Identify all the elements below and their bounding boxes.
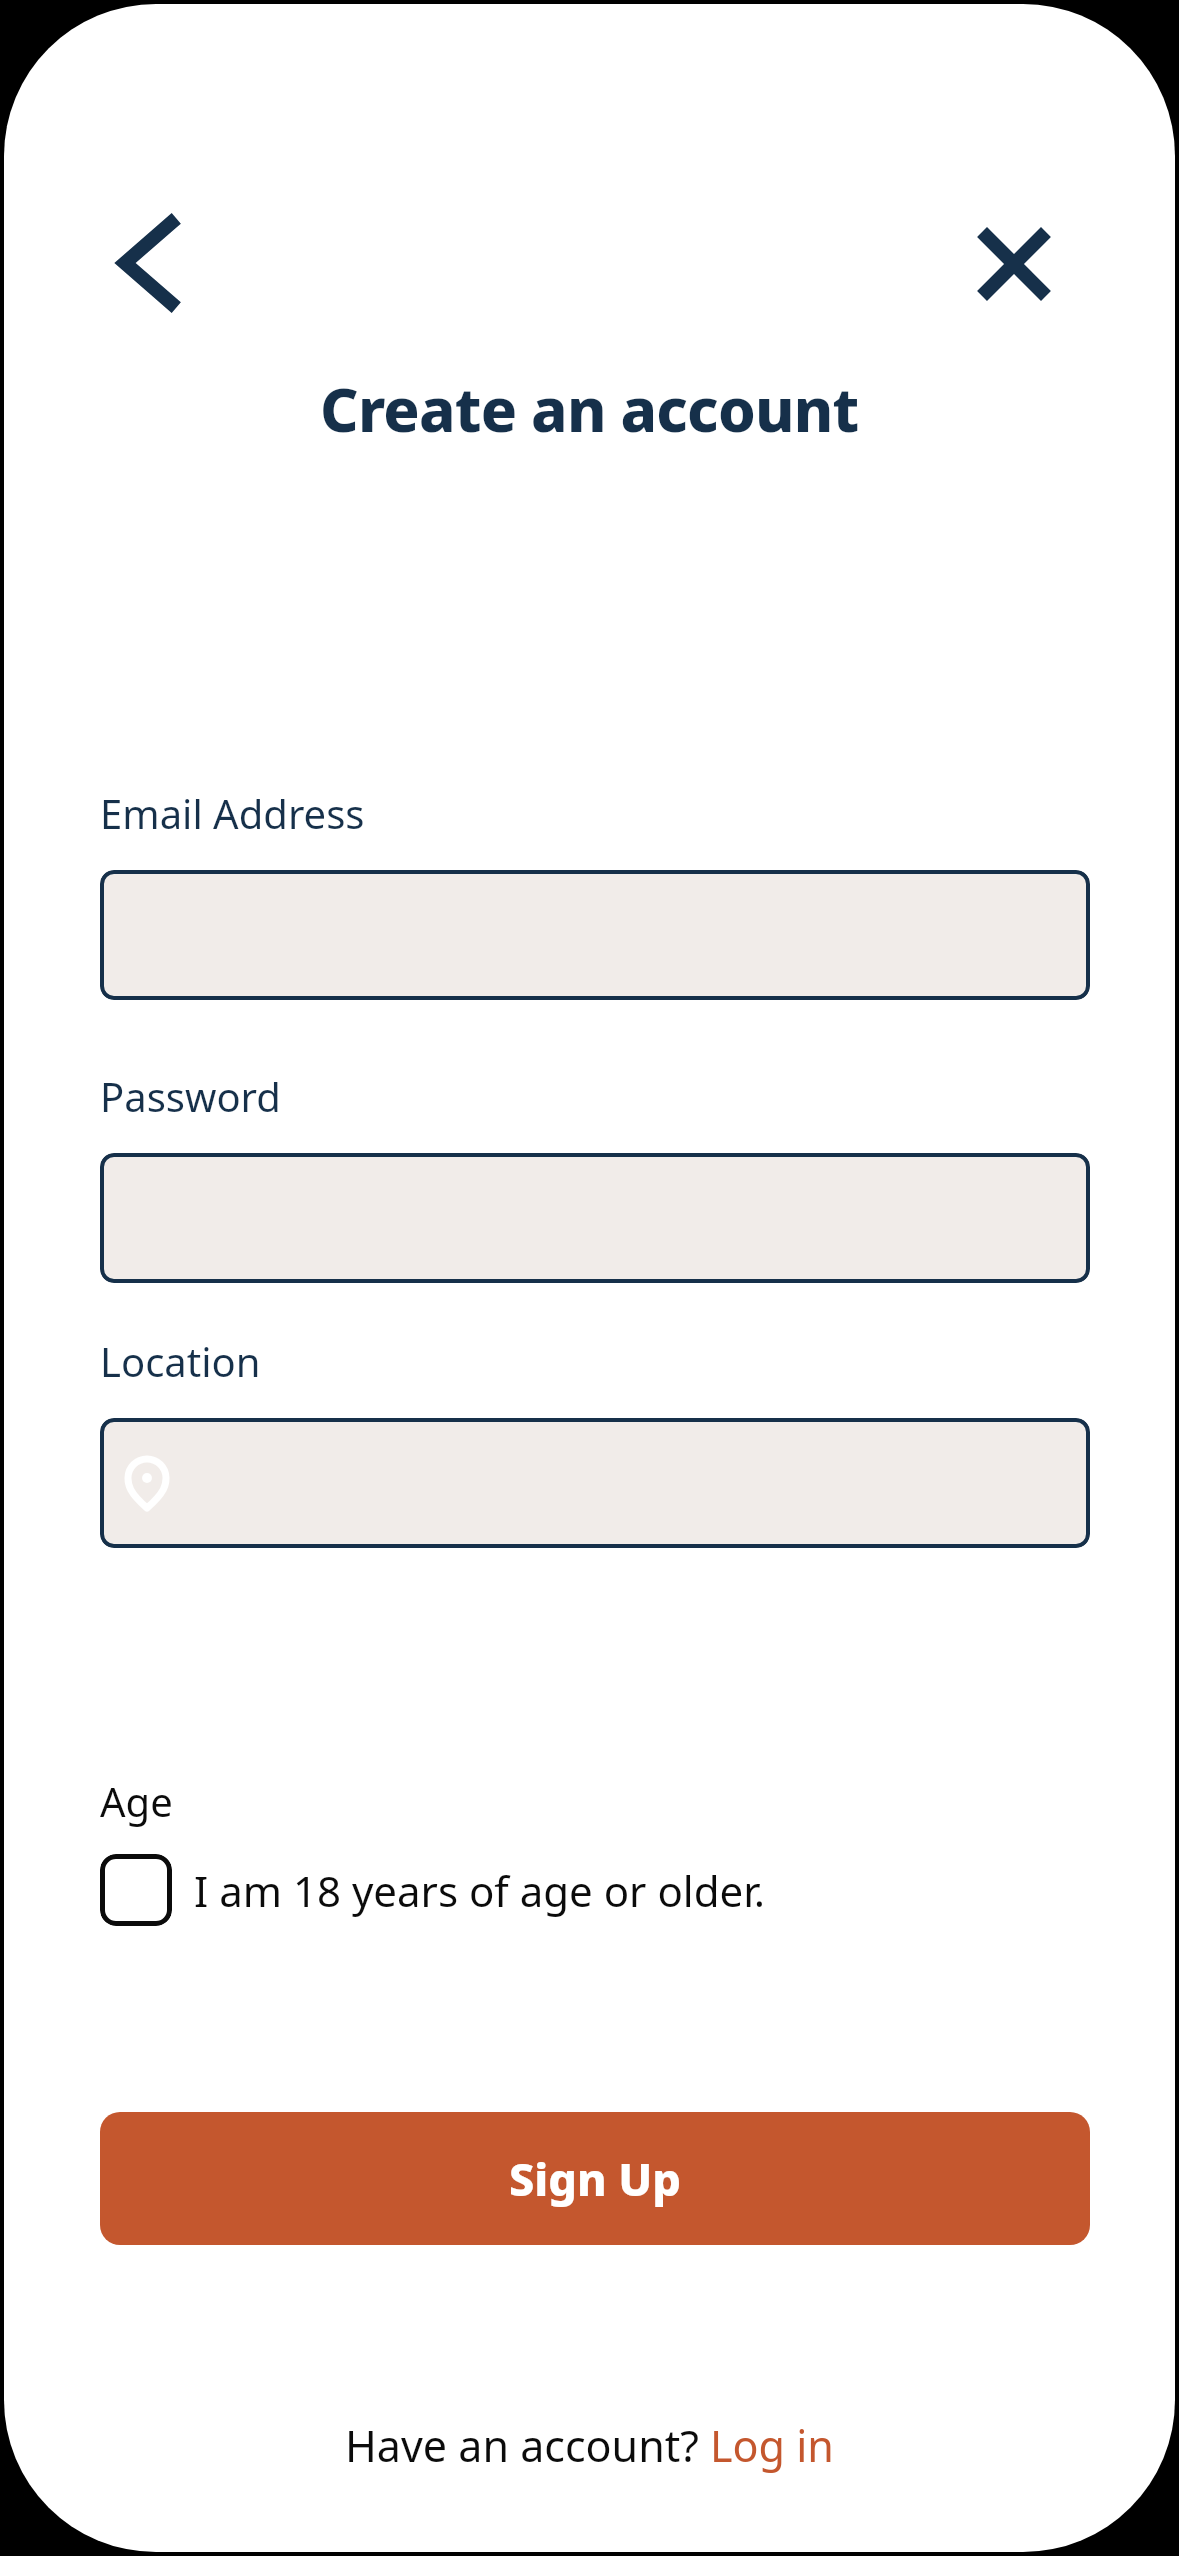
- staticText: Email Address: [100, 786, 365, 840]
- button[interactable]: Back: [92, 200, 202, 326]
- staticText: Create an account: [320, 368, 859, 450]
- button[interactable]: Sign Up: [100, 2112, 1090, 2245]
- button[interactable]: [100, 1153, 1090, 1283]
- button[interactable]: Close: [956, 206, 1072, 322]
- button[interactable]: [100, 1418, 1090, 1548]
- staticText: Password: [100, 1069, 281, 1123]
- staticText: Age: [100, 1774, 173, 1828]
- button[interactable]: [100, 870, 1090, 1000]
- staticText: I am 18 years of age or older.: [194, 1862, 766, 1919]
- staticText: Sign Up: [509, 2148, 682, 2209]
- staticText: Have an account? Log in: [345, 2416, 834, 2475]
- button[interactable]: Have an account? Log in: [345, 2416, 834, 2475]
- staticText: Location: [100, 1334, 261, 1388]
- button[interactable]: I am 18 years of age or older.: [100, 1850, 766, 1930]
